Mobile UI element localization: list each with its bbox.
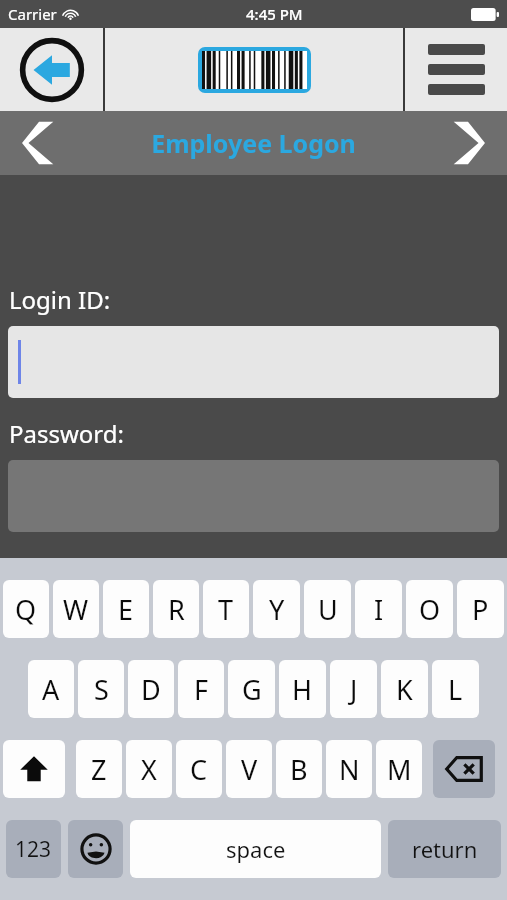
staticText: M — [387, 751, 412, 788]
staticText: K — [396, 671, 413, 708]
button[interactable]: K — [381, 660, 428, 718]
staticText: H — [292, 671, 313, 708]
button[interactable]: Q — [3, 580, 49, 638]
staticText: V — [241, 751, 258, 788]
button[interactable]: B — [276, 740, 322, 798]
staticText: S — [94, 671, 109, 708]
staticText: F — [194, 671, 209, 708]
staticText: 4:45 PM — [246, 4, 303, 24]
staticText: A — [42, 671, 60, 708]
button[interactable]: Next — [431, 111, 507, 175]
button[interactable] — [8, 326, 499, 398]
staticText: X — [141, 751, 157, 788]
staticText: Carrier — [8, 4, 57, 24]
staticText: P — [472, 591, 489, 628]
staticText: R — [168, 591, 185, 628]
staticText: C — [190, 751, 208, 788]
staticText: Z — [91, 751, 107, 788]
button[interactable]: V — [226, 740, 272, 798]
staticText: L — [448, 671, 463, 708]
button[interactable]: Z — [76, 740, 122, 798]
button[interactable]: Backspace — [433, 740, 495, 798]
staticText: W — [63, 591, 89, 628]
staticText: space — [226, 834, 286, 864]
button[interactable]: Emoji — [68, 820, 123, 878]
staticText: Password: — [9, 417, 124, 450]
button[interactable]: S — [78, 660, 124, 718]
button[interactable]: A — [28, 660, 74, 718]
button[interactable]: Menu — [405, 28, 507, 111]
button[interactable]: Y — [253, 580, 300, 638]
button[interactable]: X — [126, 740, 172, 798]
button[interactable]: M — [376, 740, 422, 798]
button[interactable]: O — [406, 580, 453, 638]
button[interactable]: T — [203, 580, 249, 638]
staticText: O — [419, 591, 441, 628]
button[interactable]: I — [355, 580, 402, 638]
button[interactable]: Shift — [3, 740, 65, 798]
staticText: Login ID: — [9, 283, 111, 316]
button[interactable]: R — [153, 580, 199, 638]
button[interactable]: W — [53, 580, 99, 638]
button[interactable]: D — [128, 660, 174, 718]
button[interactable]: Previous — [0, 111, 76, 175]
button[interactable]: Back — [0, 28, 103, 111]
staticText: U — [318, 591, 338, 628]
staticText: 123 — [15, 835, 52, 864]
staticText: G — [242, 671, 262, 708]
staticText: N — [339, 751, 360, 788]
staticText: return — [412, 834, 478, 864]
button[interactable]: L — [432, 660, 479, 718]
staticText: D — [141, 671, 161, 708]
staticText: T — [218, 591, 234, 628]
button[interactable]: H — [279, 660, 326, 718]
staticText: E — [118, 591, 134, 628]
staticText: B — [290, 751, 308, 788]
button[interactable]: G — [228, 660, 275, 718]
button[interactable]: P — [457, 580, 504, 638]
staticText: Y — [269, 591, 285, 628]
button[interactable]: C — [176, 740, 222, 798]
button[interactable]: Scan barcode — [105, 28, 403, 111]
button[interactable]: E — [103, 580, 149, 638]
staticText: Employee Logon — [151, 126, 356, 160]
button[interactable]: N — [326, 740, 372, 798]
staticText: Q — [15, 591, 37, 628]
button[interactable]: return — [388, 820, 501, 878]
staticText: J — [350, 671, 358, 708]
button[interactable]: 123 — [6, 820, 61, 878]
button[interactable]: U — [304, 580, 351, 638]
button[interactable]: space — [130, 820, 381, 878]
button[interactable]: J — [330, 660, 377, 718]
button[interactable]: F — [178, 660, 224, 718]
staticText: I — [374, 591, 384, 628]
